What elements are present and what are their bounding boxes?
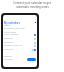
staticText: Connect your calendar to get [13, 1, 51, 5]
button[interactable]: Auto sync [4, 48, 36, 51]
staticText: automatic meeting notes [16, 5, 49, 9]
staticText: Not now [4, 58, 13, 61]
button[interactable]: Work calendar [4, 33, 36, 36]
staticText: Auto sync [4, 48, 14, 51]
button[interactable]: Holidays in the US [4, 44, 36, 47]
staticText: Birthdays [4, 41, 14, 44]
staticText: Reminders and tasks [4, 27, 25, 30]
staticText: Out of office [4, 31, 17, 34]
staticText: Personal [4, 37, 13, 40]
button[interactable]: Events [4, 24, 36, 27]
staticText: My calendars [4, 21, 20, 24]
staticText: Holidays in the US [4, 44, 22, 47]
staticText: Work calendar [4, 33, 19, 36]
button[interactable]: Personal [4, 37, 36, 40]
button[interactable]: Birthdays [4, 41, 36, 44]
button[interactable]: Settings [4, 55, 36, 58]
button[interactable]: Reminders and tasks [4, 27, 36, 30]
button[interactable] [27, 58, 36, 61]
staticText: Settings [4, 55, 12, 58]
button[interactable]: Out of office [4, 31, 36, 34]
staticText: Events [4, 24, 11, 27]
